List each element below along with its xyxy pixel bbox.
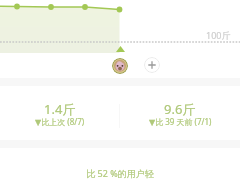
button[interactable]: 1.4斤 bbox=[0, 86, 120, 115]
button[interactable]: Add member bbox=[144, 57, 160, 73]
staticText: ▼比上次 (8/7) bbox=[35, 116, 85, 127]
staticText: 9.6斤 bbox=[164, 100, 196, 118]
button[interactable]: User avatar bbox=[112, 58, 128, 74]
button[interactable]: Weight trend chart bbox=[0, 0, 240, 53]
staticText: 100斤 bbox=[206, 29, 231, 41]
staticText: 1.4斤 bbox=[44, 100, 76, 118]
staticText: ▼比 39 天前 (7/1) bbox=[149, 116, 212, 127]
button[interactable]: 比 52 %的用户轻 bbox=[0, 160, 240, 180]
staticText: 比 52 %的用户轻 bbox=[86, 167, 154, 179]
button[interactable]: 9.6斤 bbox=[120, 86, 240, 115]
